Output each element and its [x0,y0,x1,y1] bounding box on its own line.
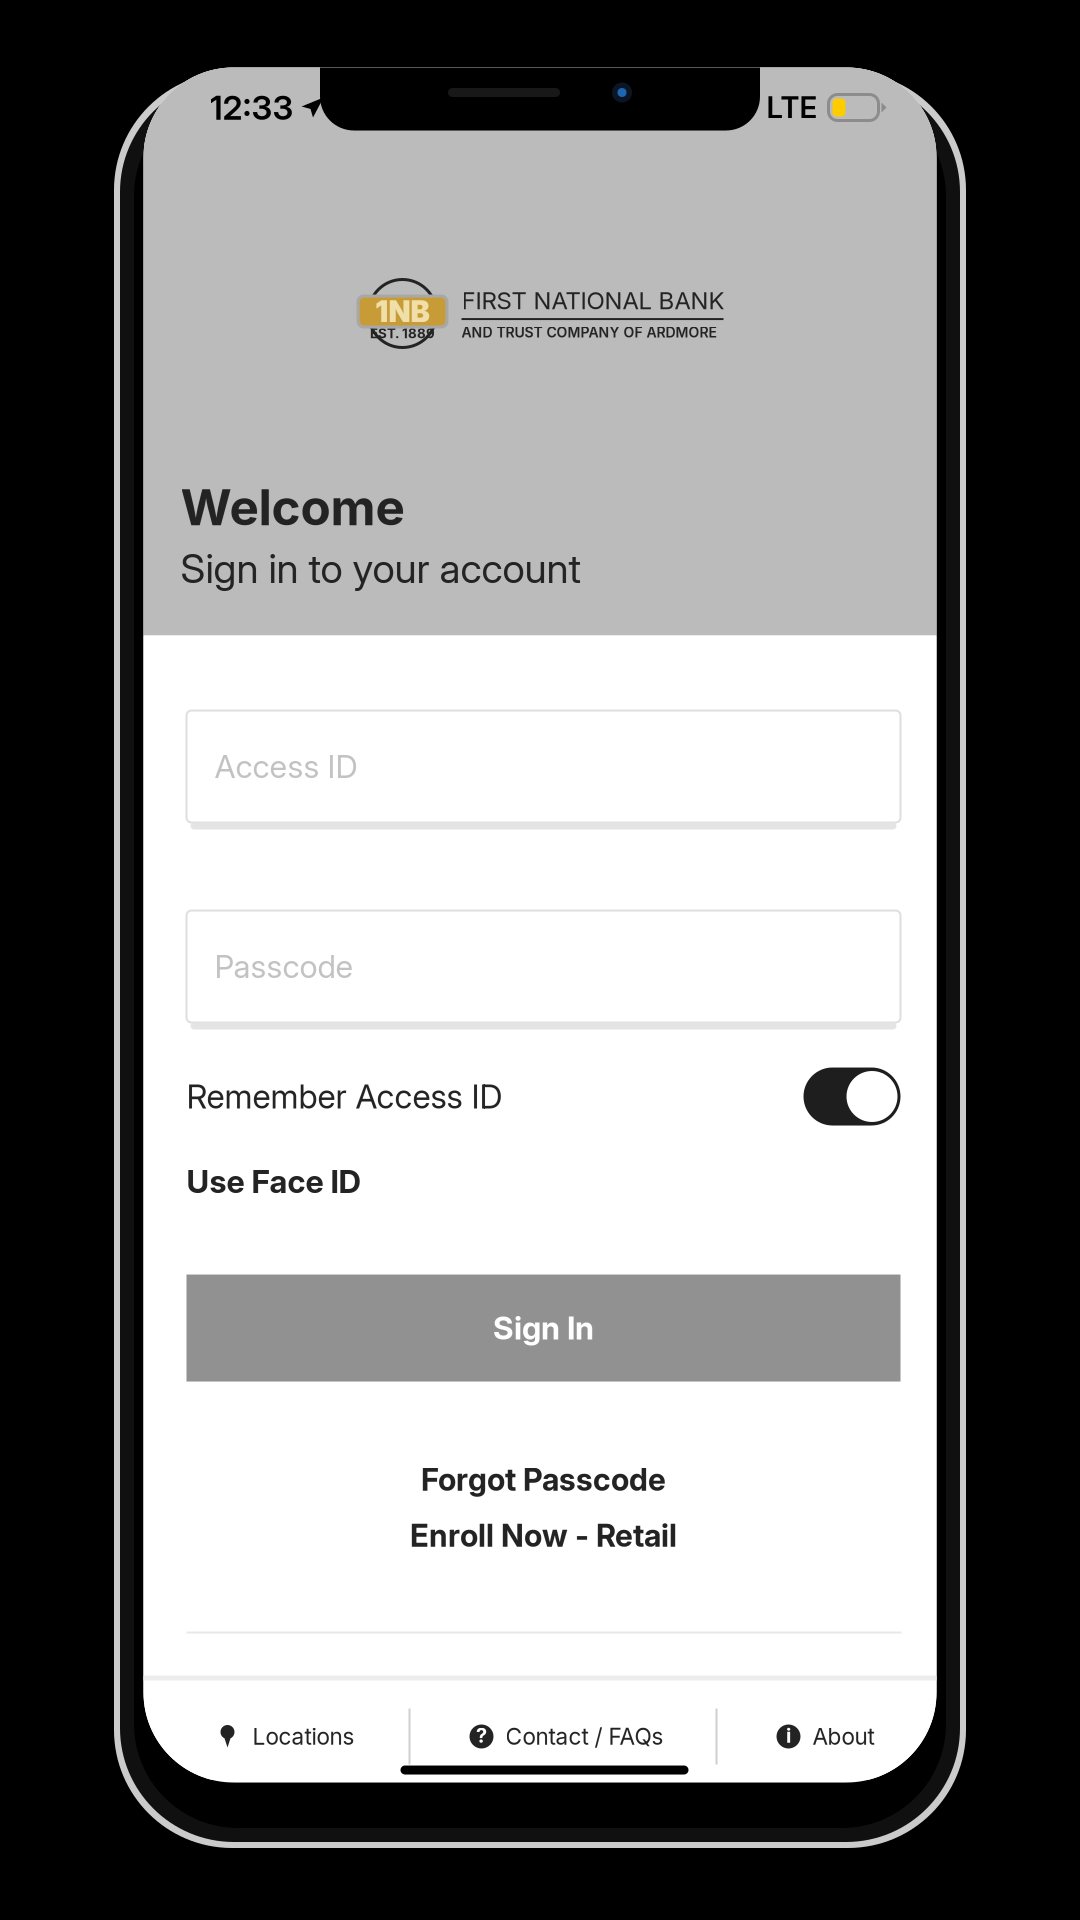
staticText: FIRST NATIONAL BANK [461,286,724,315]
staticText: About [812,1723,874,1750]
staticText: EST. 1889 [370,325,435,341]
staticText: 1NB [375,294,429,329]
staticText: Access ID [214,747,357,786]
button[interactable]: Forgot Passcode [186,1453,900,1505]
staticText: Contact / FAQs [505,1723,663,1750]
staticText: Remember Access ID [186,1077,502,1116]
staticText: 12:33 [209,87,293,128]
staticText: LTE [766,90,817,125]
staticText: Passcode [214,947,353,986]
staticText: Sign In [493,1309,594,1347]
staticText: Use Face ID [186,1162,360,1201]
staticText: ? [476,1723,487,1747]
staticText: Enroll Now - Retail [410,1517,677,1554]
staticText: AND TRUST COMPANY OF ARDMORE [461,324,716,341]
button[interactable]: Sign In [186,1274,900,1381]
staticText: Welcome [180,477,404,537]
button[interactable]: Locations [143,1692,409,1780]
staticText: Forgot Passcode [421,1461,666,1498]
staticText: Sign in to your account [180,544,581,593]
staticText: i [786,1723,791,1747]
staticText: Locations [252,1723,354,1750]
button[interactable]: i [717,1692,936,1780]
button[interactable]: Remember Access ID [803,1067,900,1125]
button[interactable]: ? [410,1692,717,1780]
button[interactable]: Enroll Now - Retail [186,1509,900,1561]
